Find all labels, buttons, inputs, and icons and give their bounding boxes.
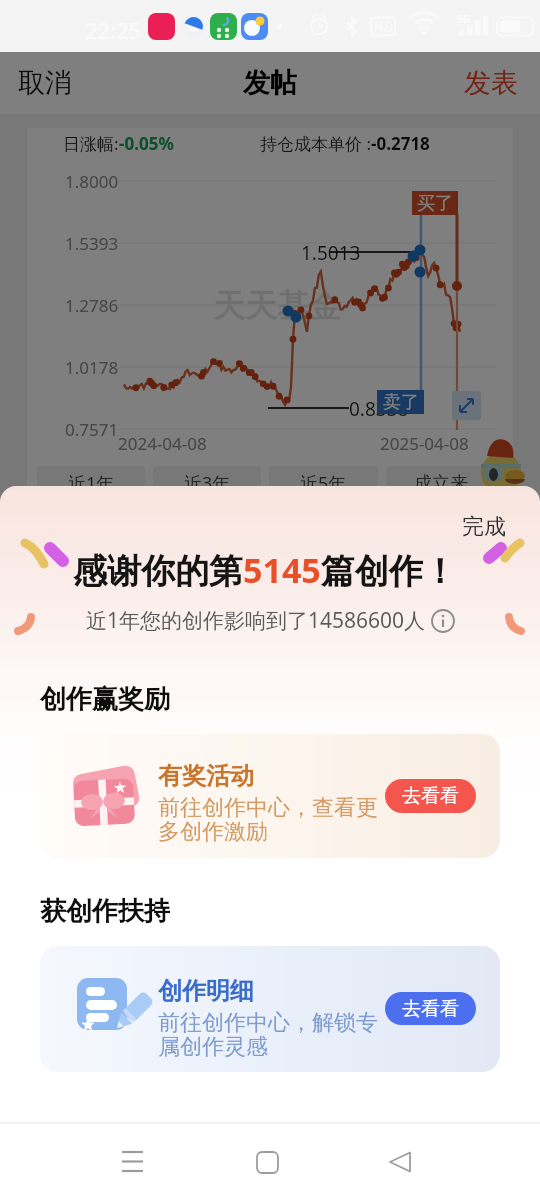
staticText: 0.8338 xyxy=(349,396,409,422)
staticText: 创作明细 xyxy=(158,976,254,1006)
staticText: 近3年 xyxy=(184,471,231,496)
button[interactable]: 创作明细 xyxy=(40,946,500,1072)
staticText: 卖了 xyxy=(383,391,419,414)
button[interactable]: 有奖活动 xyxy=(40,734,500,858)
staticText: 去看看 xyxy=(402,784,459,808)
staticText: 有奖活动 xyxy=(158,761,254,791)
staticText: 近1年您的创作影响到了14586600人 xyxy=(86,606,426,635)
staticText: 创作赢奖励 xyxy=(40,683,170,716)
button[interactable]: 成立来 xyxy=(386,466,495,500)
staticText: 买了 xyxy=(417,192,453,215)
other: Assistant xyxy=(481,438,521,494)
staticText: 取消 xyxy=(18,66,72,100)
button[interactable]: 去看看 xyxy=(385,779,476,813)
staticText: 发表 xyxy=(464,66,518,100)
staticText: 1.5393 xyxy=(65,232,119,255)
button[interactable]: 近5年 xyxy=(269,466,378,500)
staticText: 获创作扶持 xyxy=(40,895,170,928)
staticText: 近1年 xyxy=(68,471,115,496)
staticText: 1.8000 xyxy=(65,170,119,193)
staticText: -0.2718 xyxy=(371,132,430,155)
staticText: 1.0178 xyxy=(65,356,119,379)
staticText: 1.2786 xyxy=(65,294,119,317)
staticText: 0.7571 xyxy=(65,418,119,441)
staticText: 2024-04-08 xyxy=(118,432,207,455)
staticText: 去看看 xyxy=(402,997,459,1021)
button[interactable]: 近3年 xyxy=(153,466,261,500)
staticText: 持仓成本单价 : xyxy=(260,132,371,155)
staticText: 前往创作中心，解锁专 属创作灵感 xyxy=(158,1009,378,1060)
staticText: 2025-04-08 xyxy=(380,432,469,455)
staticText: 天天基金 xyxy=(213,286,341,326)
staticText: 日涨幅: xyxy=(63,132,119,155)
other: More info xyxy=(431,609,455,633)
staticText: 成立来 xyxy=(414,472,468,495)
staticText: 1.5013 xyxy=(301,240,361,266)
staticText: 感谢你的第5145篇创作！ xyxy=(73,547,457,593)
staticText: 前往创作中心，查看更 多创作激励 xyxy=(158,794,378,845)
staticText: -0.05% xyxy=(119,132,174,155)
button[interactable]: Recent apps xyxy=(103,1132,163,1192)
staticText: 完成 xyxy=(462,513,506,541)
staticText: 近5年 xyxy=(300,471,347,496)
staticText: 发帖 xyxy=(243,66,297,100)
button[interactable]: Home xyxy=(237,1132,297,1192)
button[interactable]: Back xyxy=(370,1132,430,1192)
button[interactable]: 近1年 xyxy=(37,466,145,500)
button[interactable]: 去看看 xyxy=(385,992,476,1025)
button[interactable]: 完成 xyxy=(450,506,518,548)
